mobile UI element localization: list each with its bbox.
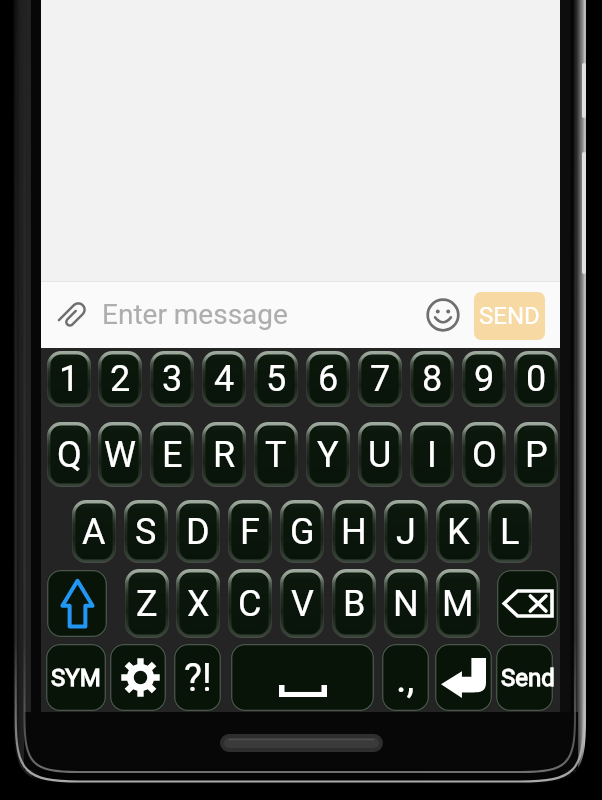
- staticText: Z: [136, 583, 158, 625]
- staticText: A: [82, 511, 106, 553]
- staticText: Y: [317, 434, 339, 476]
- button[interactable]: 1: [48, 352, 90, 406]
- staticText: G: [290, 511, 315, 553]
- button[interactable]: Shift: [47, 570, 107, 637]
- button[interactable]: Backspace: [497, 570, 558, 637]
- staticText: T: [265, 434, 287, 476]
- staticText: D: [186, 511, 210, 553]
- button[interactable]: 6: [307, 352, 349, 406]
- button[interactable]: W: [99, 423, 141, 486]
- button[interactable]: 5: [255, 352, 297, 406]
- staticText: SEND: [479, 302, 540, 330]
- staticText: C: [238, 583, 262, 625]
- button[interactable]: T: [255, 423, 297, 486]
- staticText: J: [396, 511, 416, 553]
- button[interactable]: X: [177, 570, 219, 637]
- button[interactable]: Send: [496, 644, 553, 711]
- staticText: B: [343, 583, 366, 625]
- staticText: X: [187, 583, 210, 625]
- button[interactable]: Emoji: [421, 293, 465, 337]
- staticText: 7: [370, 358, 391, 400]
- staticText: E: [162, 434, 183, 476]
- staticText: H: [341, 511, 367, 553]
- staticText: O: [472, 434, 497, 476]
- staticText: F: [240, 511, 260, 553]
- button[interactable]: 3: [151, 352, 193, 406]
- button[interactable]: O: [463, 423, 505, 486]
- button[interactable]: I: [411, 423, 453, 486]
- button[interactable]: 2: [99, 352, 141, 406]
- staticText: W: [104, 434, 136, 476]
- staticText: Send: [501, 664, 555, 692]
- staticText: 5: [266, 358, 287, 400]
- button[interactable]: G: [281, 501, 323, 562]
- staticText: .,: [396, 655, 415, 702]
- staticText: L: [500, 511, 520, 553]
- button[interactable]: B: [333, 570, 375, 637]
- staticText: 4: [214, 358, 235, 400]
- staticText: V: [291, 583, 314, 625]
- button[interactable]: 8: [411, 352, 453, 406]
- button[interactable]: 9: [463, 352, 505, 406]
- button[interactable]: 0: [515, 352, 557, 406]
- button[interactable]: 4: [203, 352, 245, 406]
- staticText: M: [442, 583, 474, 625]
- button[interactable]: Enter: [435, 644, 492, 711]
- button[interactable]: Settings: [110, 644, 166, 711]
- button[interactable]: C: [229, 570, 271, 637]
- button[interactable]: K: [437, 501, 479, 562]
- staticText: 3: [162, 358, 183, 400]
- button[interactable]: R: [203, 423, 245, 486]
- staticText: I: [427, 434, 437, 476]
- button[interactable]: Z: [126, 570, 168, 637]
- staticText: 2: [110, 358, 131, 400]
- staticText: P: [525, 434, 548, 476]
- button[interactable]: Y: [307, 423, 349, 486]
- staticText: U: [368, 434, 392, 476]
- button[interactable]: F: [229, 501, 271, 562]
- button[interactable]: M: [437, 570, 479, 637]
- button[interactable]: Q: [48, 423, 90, 486]
- staticText: 6: [318, 358, 339, 400]
- button[interactable]: J: [385, 501, 427, 562]
- staticText: Enter message: [102, 298, 288, 331]
- staticText: N: [393, 583, 419, 625]
- button[interactable]: P: [515, 423, 557, 486]
- button[interactable]: .,: [382, 644, 429, 711]
- button[interactable]: V: [281, 570, 323, 637]
- button[interactable]: D: [177, 501, 219, 562]
- button[interactable]: E: [151, 423, 193, 486]
- staticText: ?!: [184, 656, 212, 701]
- button[interactable]: L: [489, 501, 531, 562]
- button[interactable]: Attach file: [53, 293, 97, 337]
- staticText: 0: [526, 358, 547, 400]
- button[interactable]: SYM: [46, 644, 106, 711]
- staticText: K: [447, 511, 470, 553]
- staticText: R: [213, 434, 236, 476]
- staticText: S: [135, 511, 157, 553]
- button[interactable]: H: [333, 501, 375, 562]
- button[interactable]: 7: [359, 352, 401, 406]
- staticText: 8: [422, 358, 443, 400]
- button[interactable]: S: [125, 501, 167, 562]
- button[interactable]: N: [385, 570, 427, 637]
- staticText: SYM: [51, 664, 101, 692]
- staticText: 9: [474, 358, 495, 400]
- button[interactable]: ?!: [174, 644, 221, 711]
- button[interactable]: A: [73, 501, 115, 562]
- button[interactable]: SEND: [474, 292, 545, 340]
- staticText: Q: [57, 434, 82, 476]
- staticText: 1: [59, 358, 80, 400]
- button[interactable]: U: [359, 423, 401, 486]
- button[interactable]: Space: [231, 644, 374, 711]
